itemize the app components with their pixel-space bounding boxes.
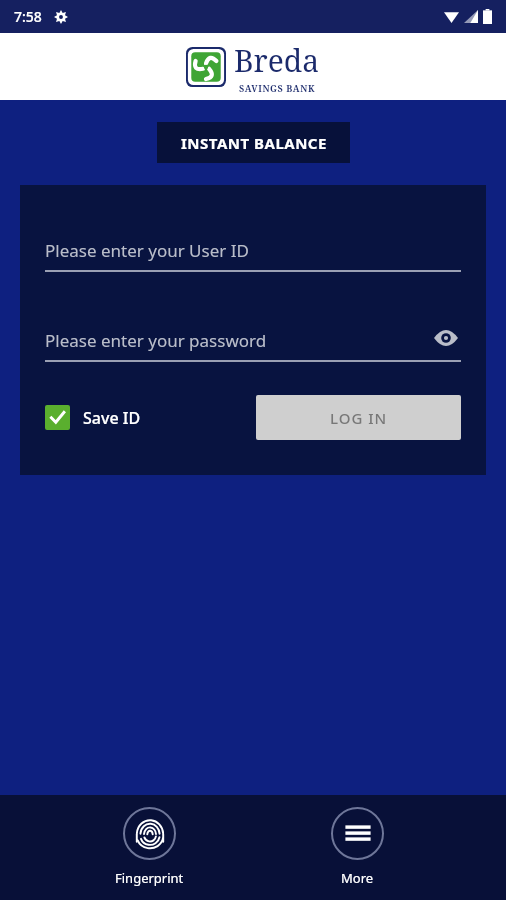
staticText: More bbox=[341, 869, 374, 887]
staticText: SAVINGS BANK bbox=[239, 82, 316, 94]
button[interactable]: INSTANT BALANCE bbox=[157, 122, 350, 163]
button[interactable]: Save ID bbox=[45, 405, 141, 430]
staticText: Fingerprint bbox=[115, 869, 184, 887]
button[interactable]: Please enter your password bbox=[45, 320, 461, 362]
button[interactable]: Show password bbox=[431, 323, 461, 353]
staticText: Breda bbox=[234, 40, 320, 81]
staticText: INSTANT BALANCE bbox=[181, 133, 327, 153]
button[interactable]: Please enter your User ID bbox=[45, 230, 461, 272]
staticText: Please enter your password bbox=[45, 329, 267, 352]
button[interactable]: LOG IN bbox=[256, 395, 461, 440]
staticText: LOG IN bbox=[330, 408, 388, 428]
staticText: Save ID bbox=[83, 407, 141, 429]
button[interactable]: Fingerprint login bbox=[89, 807, 209, 887]
staticText: Please enter your User ID bbox=[45, 239, 249, 262]
button[interactable]: More options bbox=[297, 807, 417, 887]
staticText: 7:58 bbox=[14, 7, 42, 26]
